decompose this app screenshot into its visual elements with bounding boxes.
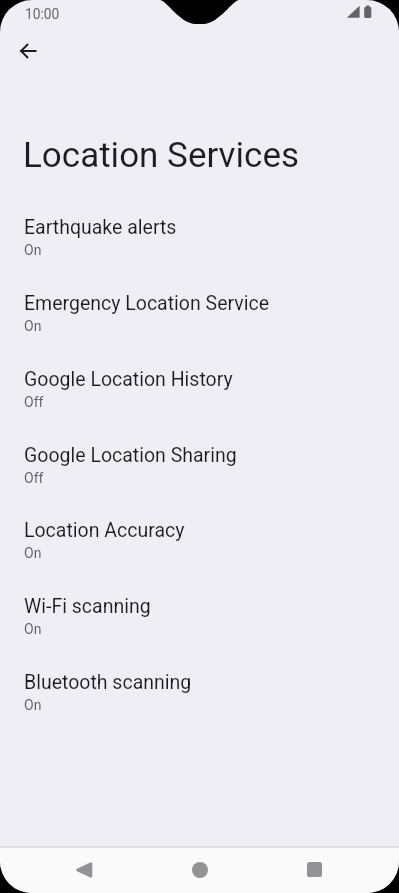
staticText: Bluetooth scanning — [24, 671, 192, 694]
button[interactable]: Google Location History — [0, 360, 399, 436]
staticText: Google Location Sharing — [24, 444, 237, 467]
button[interactable]: Back — [4, 27, 52, 75]
staticText: Google Location History — [24, 368, 233, 391]
staticText: On — [24, 621, 42, 637]
staticText: On — [24, 545, 42, 561]
staticText: On — [24, 318, 42, 334]
button[interactable]: Bluetooth scanning — [0, 663, 399, 739]
button[interactable]: Home — [144, 847, 256, 892]
staticText: On — [24, 242, 42, 258]
staticText: Location Services — [23, 135, 300, 176]
button[interactable]: Earthquake alerts — [0, 208, 399, 284]
staticText: Off — [24, 394, 44, 410]
staticText: Location Accuracy — [24, 519, 185, 542]
button[interactable]: Location Accuracy — [0, 511, 399, 587]
button[interactable]: Recent apps — [258, 847, 370, 892]
staticText: On — [24, 697, 42, 713]
staticText: Off — [24, 470, 44, 486]
staticText: Wi-Fi scanning — [24, 595, 151, 618]
button[interactable]: Wi-Fi scanning — [0, 587, 399, 663]
button[interactable]: Google Location Sharing — [0, 436, 399, 512]
staticText: Emergency Location Service — [24, 292, 269, 315]
button[interactable]: Back — [28, 847, 140, 892]
staticText: Earthquake alerts — [24, 216, 177, 239]
button[interactable]: Emergency Location Service — [0, 284, 399, 360]
staticText: 10:00 — [25, 6, 60, 22]
